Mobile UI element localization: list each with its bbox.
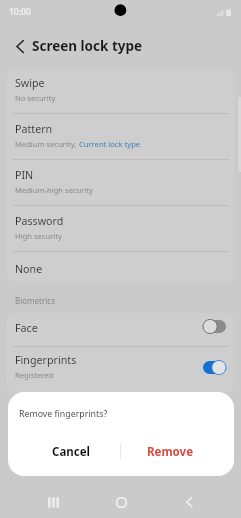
button[interactable]: Turn off: [203, 360, 226, 375]
staticText: Face: [15, 321, 38, 336]
staticText: Medium-high security: [15, 185, 93, 195]
staticText: None: [15, 262, 43, 277]
button[interactable]: PIN: [6, 160, 235, 205]
button[interactable]: Home: [98, 486, 145, 518]
staticText: PIN: [15, 168, 34, 183]
button[interactable]: Back: [165, 486, 212, 518]
staticText: 10:00: [9, 6, 31, 18]
staticText: No security: [15, 93, 56, 103]
staticText: Swipe: [15, 76, 45, 91]
button[interactable]: Turn on: [203, 319, 226, 334]
staticText: Pattern: [15, 122, 53, 137]
staticText: Current lock type: [79, 139, 141, 149]
staticText: Fingerprints: [15, 353, 77, 368]
button[interactable]: Back: [0, 24, 32, 68]
button[interactable]: Remove: [121, 427, 220, 476]
staticText: High security: [15, 231, 62, 241]
button[interactable]: Swipe: [6, 68, 235, 113]
staticText: Biometrics: [15, 295, 56, 306]
staticText: Screen lock type: [32, 37, 143, 55]
staticText: Registered: [15, 370, 54, 380]
staticText: Password: [15, 214, 64, 229]
button[interactable]: Cancel: [22, 427, 120, 476]
button[interactable]: Face: [6, 313, 235, 346]
button[interactable]: Fingerprints: [6, 347, 235, 393]
staticText: Remove fingerprints?: [19, 408, 108, 420]
button[interactable]: None: [6, 252, 235, 283]
button[interactable]: Pattern: [6, 114, 235, 159]
staticText: Remove: [147, 444, 194, 460]
staticText: Medium security,: [15, 139, 79, 149]
button[interactable]: Recents: [30, 486, 77, 518]
staticText: Cancel: [52, 444, 90, 460]
button[interactable]: Password: [6, 206, 235, 251]
